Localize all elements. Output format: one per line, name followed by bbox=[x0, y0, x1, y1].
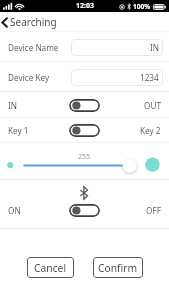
staticText: 100% bbox=[133, 2, 151, 11]
staticText: 255 bbox=[78, 152, 91, 162]
staticText: OFF bbox=[146, 205, 161, 216]
button[interactable]: Cancel bbox=[27, 257, 74, 278]
staticText: IN bbox=[150, 42, 159, 53]
button[interactable]: Bluetooth on off toggle bbox=[69, 204, 100, 217]
staticText: Confirm bbox=[98, 261, 138, 275]
staticText: OUT bbox=[144, 100, 161, 111]
staticText: 12:03 bbox=[76, 1, 94, 11]
staticText: ON bbox=[8, 205, 40, 216]
button[interactable]: Toggle between IN and OUT bbox=[69, 99, 100, 112]
staticText: Key 2 bbox=[140, 125, 161, 136]
staticText: 1234 bbox=[140, 72, 159, 83]
staticText: Key 1 bbox=[8, 125, 40, 136]
staticText: Cancel bbox=[34, 261, 67, 275]
button[interactable]: Toggle between Key 1 and Key 2 bbox=[69, 124, 100, 137]
staticText: Searching bbox=[10, 15, 57, 29]
button[interactable]: Value slider bbox=[0, 143, 169, 180]
button[interactable]: Confirm bbox=[93, 257, 143, 278]
staticText: IN bbox=[8, 100, 40, 111]
button[interactable]: Searching bbox=[0, 13, 63, 31]
button[interactable]: IN bbox=[71, 39, 163, 56]
staticText: Device Name bbox=[8, 42, 59, 53]
staticText: Device Key bbox=[8, 72, 50, 83]
button[interactable]: 1234 bbox=[71, 69, 163, 86]
